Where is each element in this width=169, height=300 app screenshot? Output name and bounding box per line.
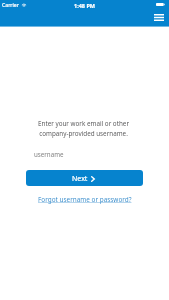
button[interactable]: username [0,147,169,161]
staticText: username [34,150,64,158]
staticText: Carrier [2,2,19,9]
button[interactable]: Next [26,170,143,186]
button[interactable]: Forgot username or password? [38,195,132,204]
button[interactable]: Menu [154,13,164,21]
staticText: 1:48 PM [74,2,96,9]
staticText: Next [72,174,88,184]
staticText: Enter your work email or other company-p… [13,119,154,138]
